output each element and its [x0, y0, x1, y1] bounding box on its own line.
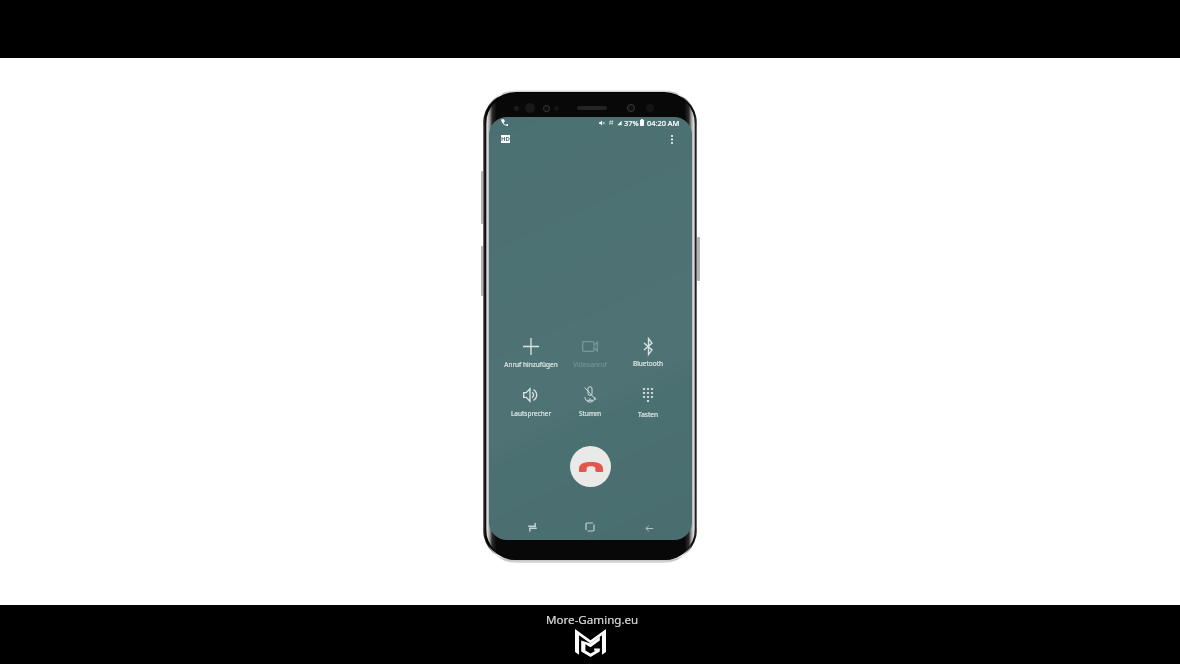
button[interactable]: Stumm — [555, 381, 625, 417]
button[interactable]: Tasten — [613, 382, 683, 418]
button[interactable]: Recents — [512, 513, 552, 540]
staticText: Anruf hinzufügen — [496, 360, 566, 369]
button[interactable]: Anruf hinzufügen — [496, 333, 566, 369]
staticText: 04:20 AM — [647, 118, 680, 128]
staticText: Stumm — [555, 409, 625, 418]
staticText: Videoanruf — [555, 360, 625, 369]
button[interactable]: Home — [570, 513, 610, 540]
staticText: HD — [501, 135, 510, 143]
staticText: Lautsprecher — [496, 409, 566, 418]
staticText: More-Gaming.eu — [546, 612, 639, 628]
button[interactable]: Bluetooth — [613, 333, 683, 369]
staticText: 37% — [624, 118, 639, 128]
button[interactable]: Back — [629, 514, 669, 540]
button[interactable]: Lautsprecher — [496, 382, 566, 418]
staticText: Tasten — [613, 410, 683, 419]
button[interactable]: More options — [662, 129, 682, 149]
staticText: Bluetooth — [613, 359, 683, 368]
button[interactable]: End call — [570, 446, 611, 487]
button[interactable]: Videoanruf — [555, 333, 625, 369]
